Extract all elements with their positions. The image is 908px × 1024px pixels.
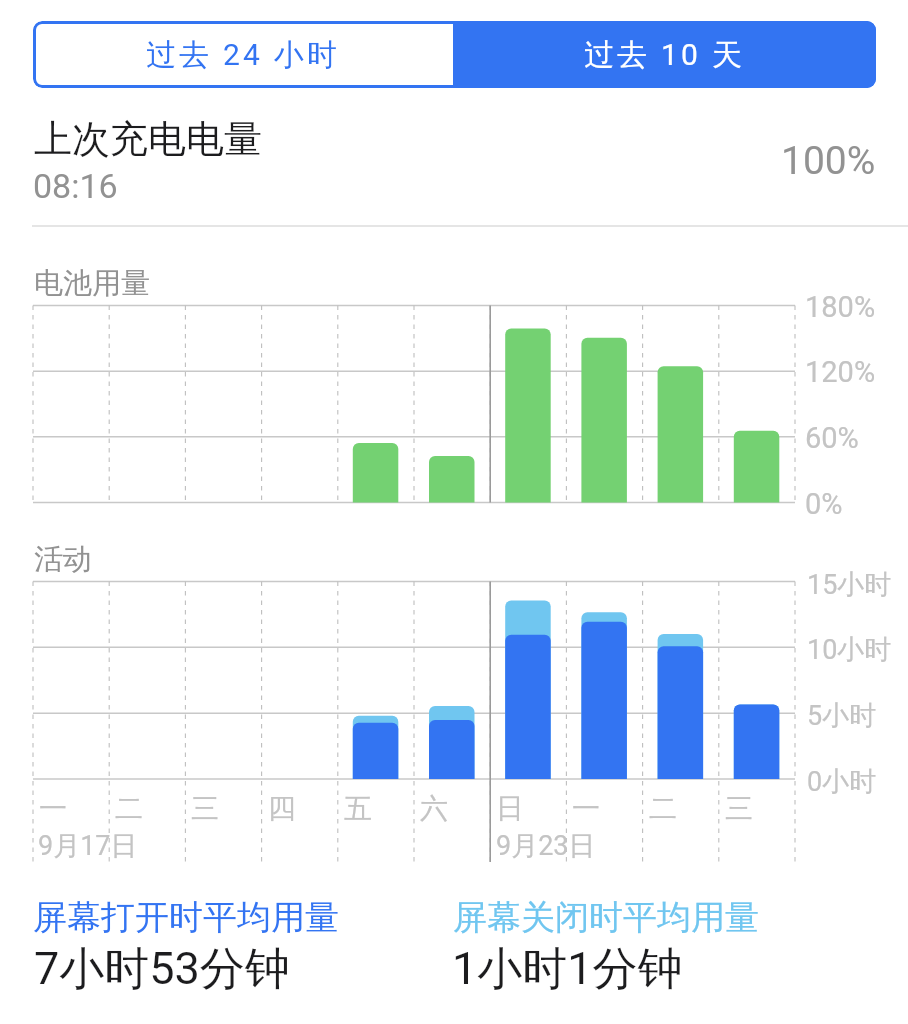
staticText: 日	[496, 791, 524, 826]
staticText: 六	[420, 791, 448, 826]
staticText: 四	[268, 791, 296, 826]
staticText: 60%	[805, 421, 859, 455]
staticText: 7小时53分钟	[34, 941, 290, 998]
staticText: 08:16	[33, 166, 118, 206]
staticText: 二	[115, 791, 143, 826]
staticText: 三	[191, 791, 219, 826]
staticText: 屏幕关闭时平均用量	[453, 896, 759, 939]
button[interactable]: 过去 10 天	[453, 21, 876, 88]
staticText: 100%	[781, 138, 876, 184]
staticText: 0小时	[807, 765, 877, 799]
staticText: 9月23日	[496, 829, 596, 863]
staticText: 一	[39, 791, 67, 826]
staticText: 5小时	[807, 699, 877, 733]
staticText: 120%	[805, 355, 876, 389]
staticText: 9月17日	[38, 829, 138, 863]
staticText: 过去 24 小时	[146, 36, 341, 74]
staticText: 0%	[805, 487, 843, 521]
staticText: 1小时1分钟	[452, 941, 683, 998]
staticText: 二	[649, 791, 677, 826]
staticText: 上次充电电量	[34, 115, 262, 163]
staticText: 电池用量	[34, 265, 150, 302]
staticText: 五	[344, 791, 372, 826]
button[interactable]: 过去 24 小时	[33, 21, 453, 88]
staticText: 三	[725, 791, 753, 826]
staticText: 屏幕打开时平均用量	[33, 896, 339, 939]
staticText: 过去 10 天	[584, 36, 746, 74]
staticText: 一	[572, 791, 600, 826]
staticText: 180%	[805, 290, 876, 324]
staticText: 15小时	[807, 568, 892, 602]
staticText: 10小时	[807, 633, 892, 667]
staticText: 活动	[34, 541, 92, 578]
